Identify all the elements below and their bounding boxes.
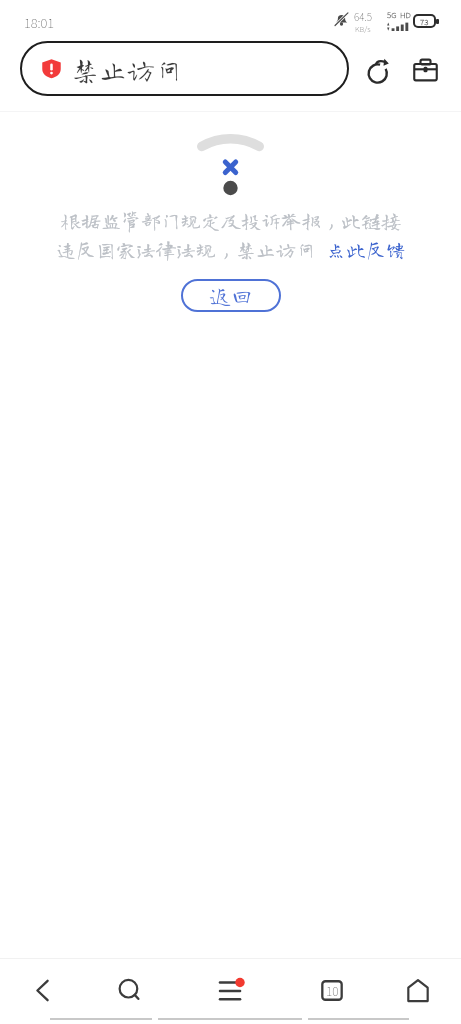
button[interactable]: Refresh bbox=[361, 52, 397, 88]
button[interactable]: Toolbox bbox=[407, 52, 443, 88]
staticText: 5G bbox=[387, 9, 397, 21]
staticText: 禁止访问 bbox=[71, 55, 184, 83]
staticText: HD bbox=[400, 9, 411, 21]
staticText: 根据监管部门规定及投诉举报，此链接 违反国家法律法规，禁止访问 点此反馈 bbox=[56, 210, 406, 260]
staticText: 返回 bbox=[209, 285, 254, 307]
staticText: 64.5 bbox=[354, 9, 372, 23]
button[interactable]: Back bbox=[14, 964, 71, 1016]
staticText: 73 bbox=[420, 16, 429, 26]
staticText: 18:01 bbox=[24, 13, 55, 32]
button[interactable]: Tabs bbox=[303, 964, 360, 1016]
button[interactable]: Home bbox=[389, 964, 446, 1016]
button[interactable]: Search bbox=[101, 964, 158, 1016]
staticText: 10 bbox=[326, 982, 339, 999]
button[interactable]: Menu bbox=[202, 964, 259, 1016]
button[interactable]: 禁止访问 bbox=[20, 41, 349, 96]
staticText: KB/s bbox=[355, 23, 371, 34]
button[interactable]: 返回 bbox=[181, 279, 281, 312]
